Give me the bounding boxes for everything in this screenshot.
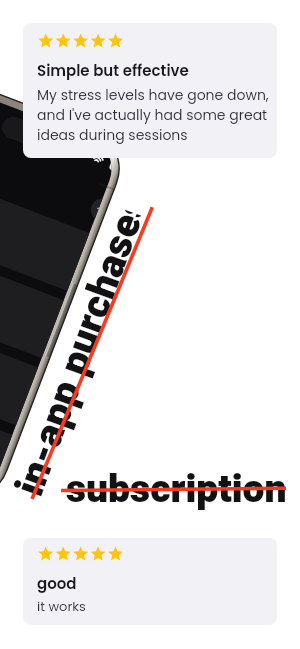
staticText: good: [37, 573, 77, 594]
staticText: Simple but effective: [37, 60, 189, 81]
staticText: subscription: [66, 461, 300, 518]
staticText: in-app purchases: [1, 202, 159, 504]
button[interactable]: Simple but effective: [23, 23, 277, 158]
staticText: it works: [37, 597, 271, 615]
other: in-app purchases: [1, 202, 159, 504]
button[interactable]: good: [23, 538, 277, 625]
staticText: My stress levels have gone down, and I'v…: [37, 85, 271, 145]
